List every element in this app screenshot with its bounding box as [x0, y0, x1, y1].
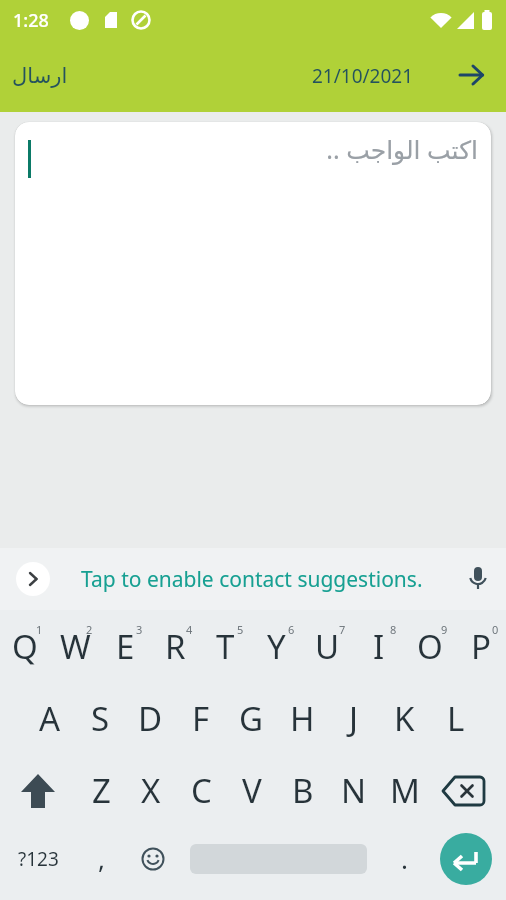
button[interactable] — [16, 562, 50, 596]
staticText: J — [349, 696, 359, 741]
staticText: 2 — [86, 622, 93, 637]
button[interactable]: B — [277, 754, 328, 827]
button[interactable]: M — [379, 754, 430, 827]
staticText: Y — [267, 624, 286, 669]
button[interactable]: D — [125, 682, 175, 754]
staticText: S — [91, 696, 110, 741]
button[interactable]: F — [175, 682, 226, 754]
button[interactable]: 21/10/2021 — [312, 63, 414, 89]
button[interactable]: E — [100, 610, 150, 682]
button[interactable]: W — [50, 610, 100, 682]
button[interactable] — [127, 822, 178, 895]
button[interactable] — [430, 822, 506, 895]
button[interactable]: ارسال — [12, 64, 68, 88]
button[interactable]: , — [76, 822, 127, 895]
button[interactable]: G — [226, 682, 277, 754]
staticText: P — [471, 624, 491, 669]
staticText: M — [390, 768, 420, 813]
button[interactable]: P — [455, 610, 506, 682]
button[interactable]: O — [404, 610, 455, 682]
staticText: V — [242, 768, 262, 813]
button[interactable]: C — [176, 754, 226, 827]
button[interactable]: Z — [76, 754, 126, 827]
staticText: 3 — [136, 622, 143, 637]
staticText: 4 — [186, 622, 193, 637]
button[interactable]: R — [150, 610, 200, 682]
staticText: F — [192, 696, 210, 741]
staticText: O — [417, 624, 443, 669]
staticText: U — [315, 624, 340, 669]
staticText: 1 — [36, 622, 43, 637]
staticText: Q — [12, 624, 38, 669]
staticText: K — [394, 696, 415, 741]
button[interactable]: Q — [0, 610, 50, 682]
button[interactable]: J — [328, 682, 379, 754]
staticText: Z — [92, 768, 111, 813]
button[interactable]: . — [379, 822, 430, 895]
button[interactable]: K — [379, 682, 430, 754]
staticText: E — [116, 624, 135, 669]
button[interactable] — [430, 754, 506, 827]
staticText: , — [98, 841, 105, 876]
button[interactable]: S — [75, 682, 125, 754]
staticText: ?123 — [18, 846, 59, 872]
staticText: R — [165, 624, 186, 669]
button[interactable]: X — [126, 754, 176, 827]
button[interactable] — [460, 64, 484, 88]
staticText: N — [341, 768, 367, 813]
staticText: L — [447, 696, 465, 741]
staticText: 9 — [441, 622, 448, 637]
button[interactable]: V — [226, 754, 277, 827]
button[interactable]: اكتب الواجب .. — [15, 122, 491, 405]
button[interactable]: U — [302, 610, 353, 682]
staticText: T — [216, 624, 235, 669]
staticText: 0 — [492, 622, 499, 637]
staticText: W — [60, 624, 91, 669]
button[interactable] — [0, 754, 76, 827]
staticText: 6 — [288, 622, 295, 637]
staticText: G — [239, 696, 264, 741]
staticText: C — [191, 768, 212, 813]
staticText: اكتب الواجب .. — [326, 132, 478, 166]
button[interactable]: N — [328, 754, 379, 827]
staticText: H — [290, 696, 315, 741]
staticText: A — [39, 696, 61, 741]
staticText: 7 — [339, 622, 346, 637]
button[interactable]: ?123 — [0, 822, 76, 895]
staticText: D — [138, 696, 163, 741]
staticText: Tap to enable contact suggestions. — [81, 565, 423, 594]
staticText: 21/10/2021 — [312, 63, 414, 89]
button[interactable]: T — [200, 610, 251, 682]
staticText: 5 — [237, 622, 244, 637]
staticText: B — [292, 768, 314, 813]
button[interactable]: Tap to enable contact suggestions. — [50, 548, 458, 610]
staticText: ارسال — [12, 64, 68, 88]
staticText: I — [373, 624, 385, 669]
button[interactable]: L — [430, 682, 481, 754]
button[interactable]: I — [353, 610, 404, 682]
button[interactable]: Y — [251, 610, 302, 682]
button[interactable] — [178, 822, 379, 895]
button[interactable]: H — [277, 682, 328, 754]
staticText: 1:28 — [13, 8, 49, 33]
button[interactable]: A — [25, 682, 75, 754]
staticText: X — [141, 768, 161, 813]
button[interactable] — [458, 559, 498, 599]
staticText: 8 — [390, 622, 397, 637]
staticText: . — [401, 841, 408, 876]
